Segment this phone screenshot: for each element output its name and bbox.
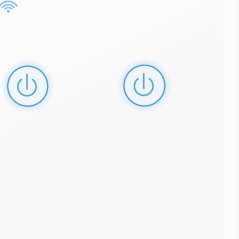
button[interactable]: Switch 2: [116, 57, 173, 114]
button[interactable]: Switch 1: [0, 58, 56, 114]
